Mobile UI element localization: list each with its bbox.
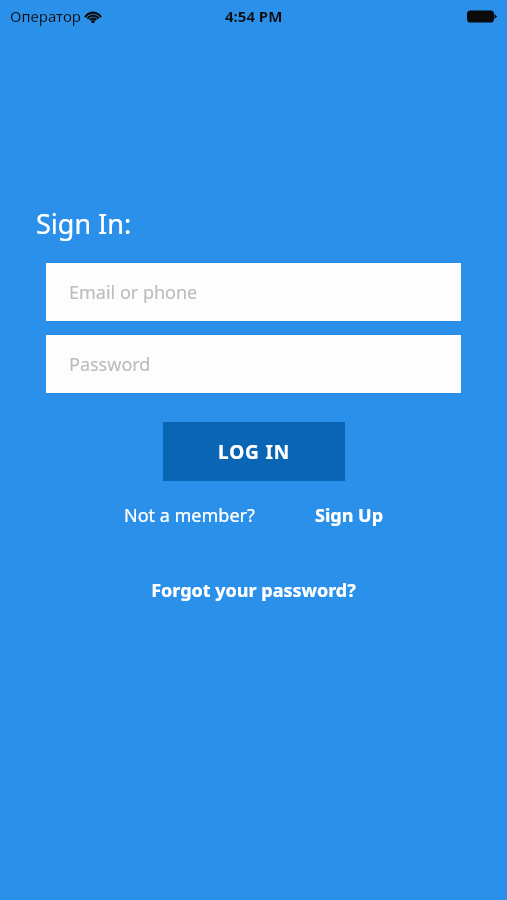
staticText: LOG IN [218, 439, 291, 465]
staticText: 4:54 PM [225, 6, 283, 26]
staticText: Оператор [10, 6, 81, 26]
staticText: Email or phone [69, 280, 198, 305]
button[interactable]: Forgot your password? [145, 574, 362, 607]
other: Wi-Fi [83, 8, 103, 24]
button[interactable]: Sign Up [311, 499, 388, 532]
staticText: Forgot your password? [151, 578, 356, 603]
button[interactable]: Email or phone [46, 263, 461, 321]
button[interactable]: Not a member? [120, 499, 259, 532]
button[interactable]: Password [46, 335, 461, 393]
button[interactable]: LOG IN [163, 422, 345, 481]
staticText: Not a member? [124, 503, 255, 528]
other: Battery [467, 9, 497, 24]
staticText: Sign In: [36, 205, 132, 242]
staticText: Password [69, 352, 151, 377]
staticText: Sign Up [315, 503, 384, 528]
